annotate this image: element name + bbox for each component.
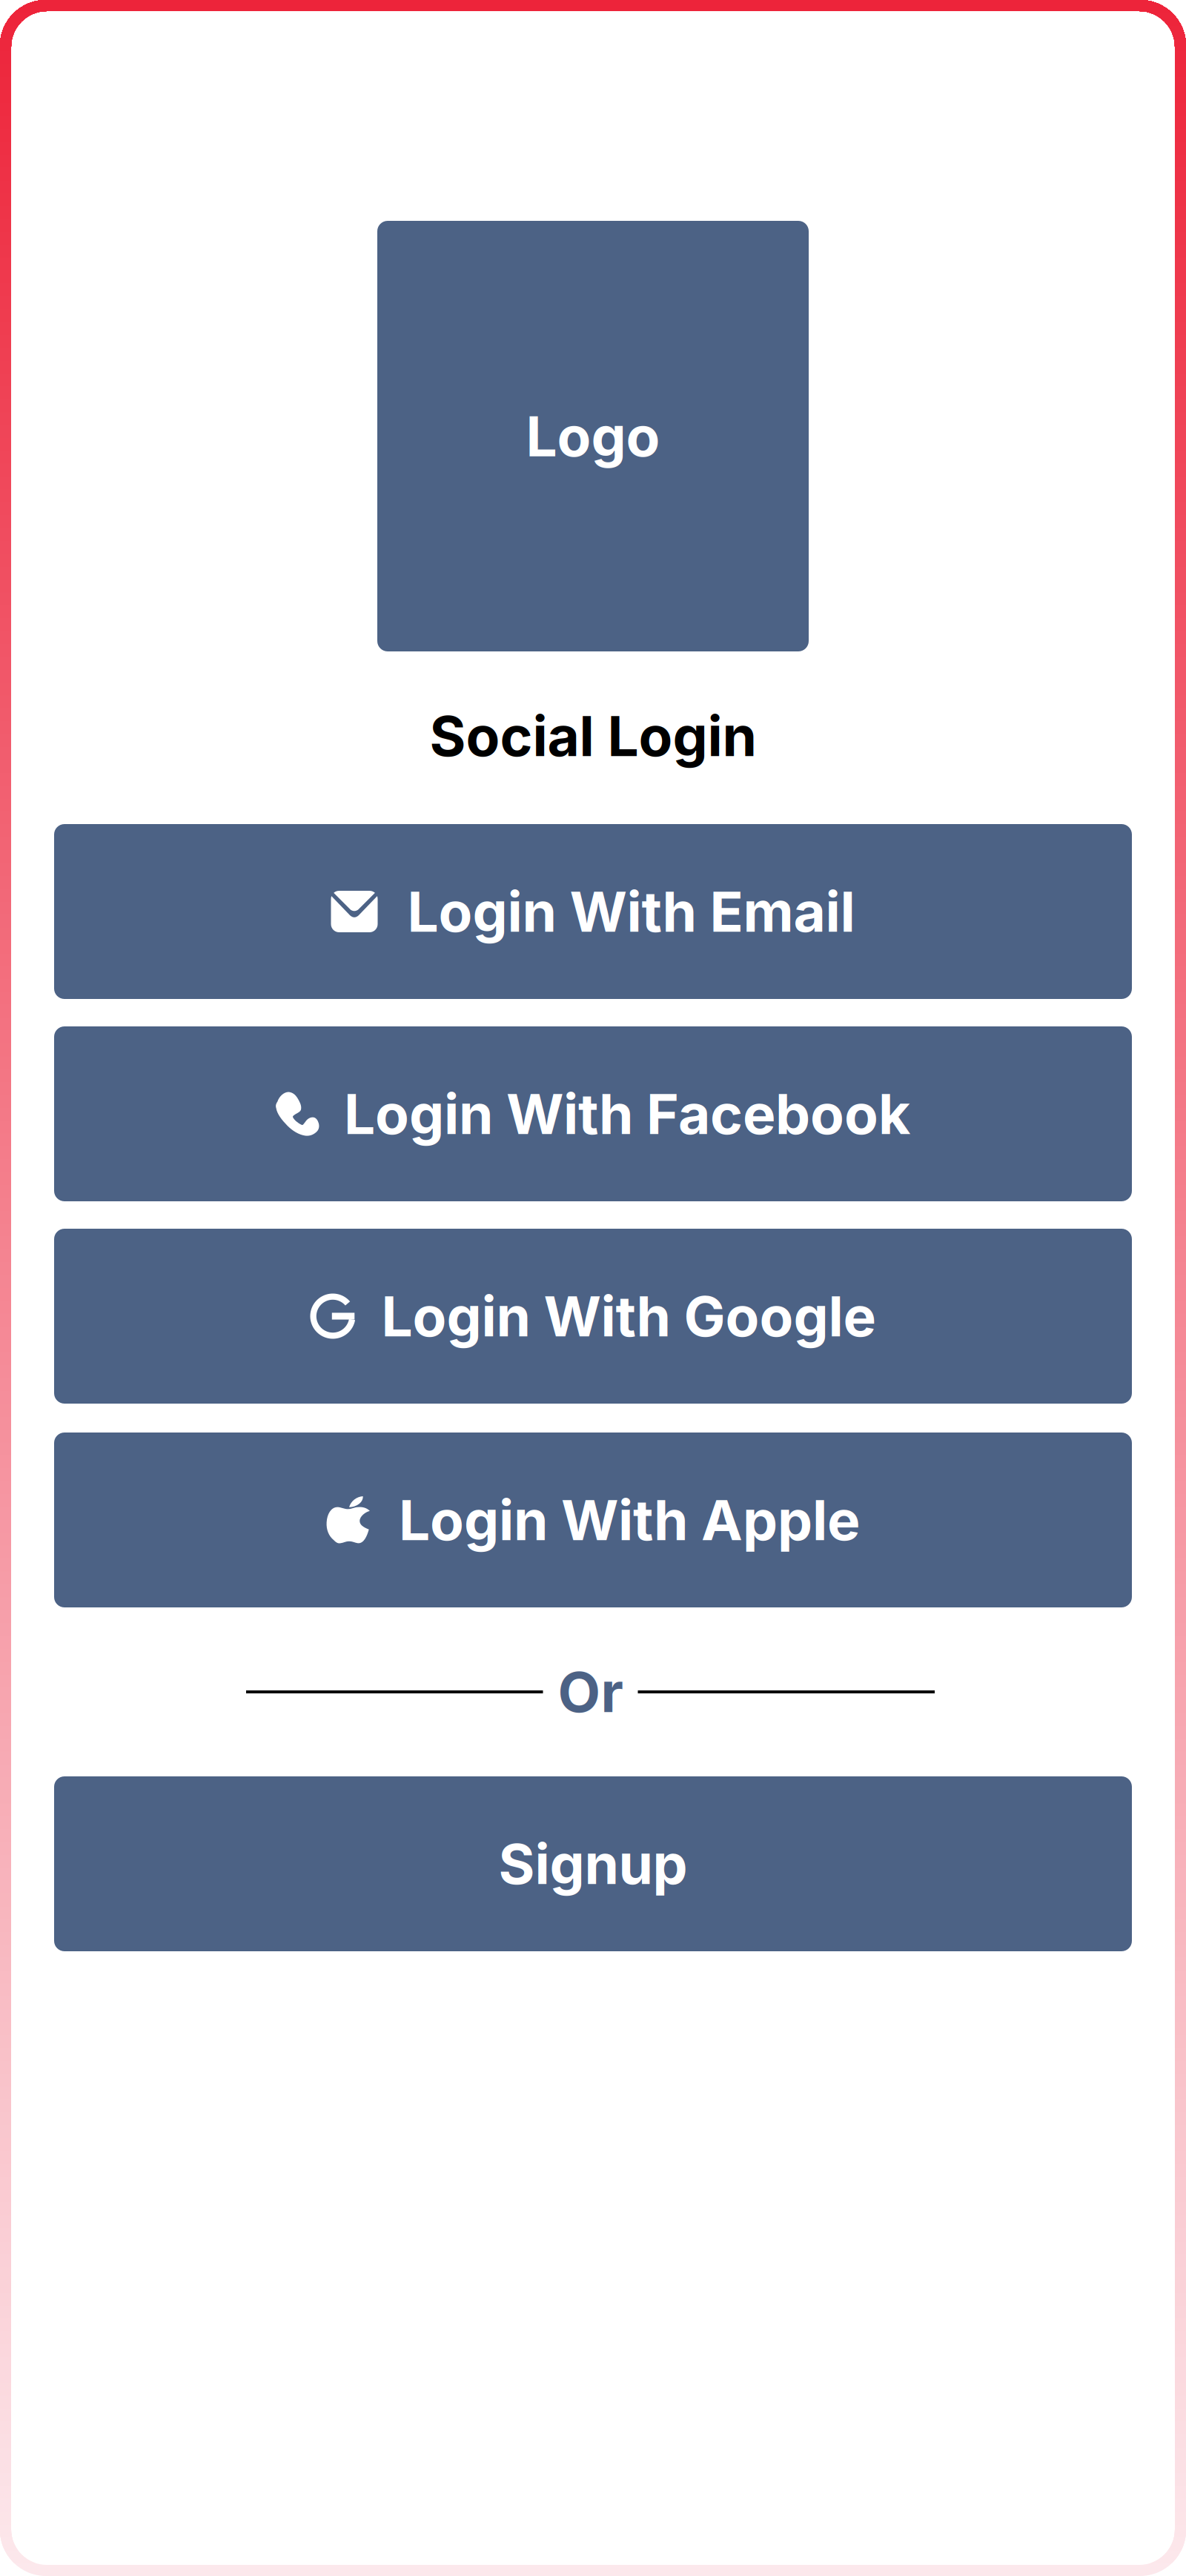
staticText: Login With Email [407, 878, 855, 945]
staticText: Or [558, 1658, 623, 1725]
button[interactable]: Login With Apple [54, 1433, 1132, 1607]
staticText: Social Login [430, 702, 756, 769]
staticText: Login With Facebook [344, 1080, 910, 1147]
button[interactable]: Login With Google [54, 1229, 1132, 1404]
staticText: Login With Google [381, 1283, 876, 1350]
staticText: Signup [498, 1830, 688, 1897]
staticText: Logo [526, 403, 660, 470]
button[interactable]: Login With Email [54, 824, 1132, 999]
staticText: Login With Apple [399, 1486, 860, 1553]
button[interactable]: Signup [54, 1776, 1132, 1951]
button[interactable]: Login With Facebook [54, 1026, 1132, 1201]
